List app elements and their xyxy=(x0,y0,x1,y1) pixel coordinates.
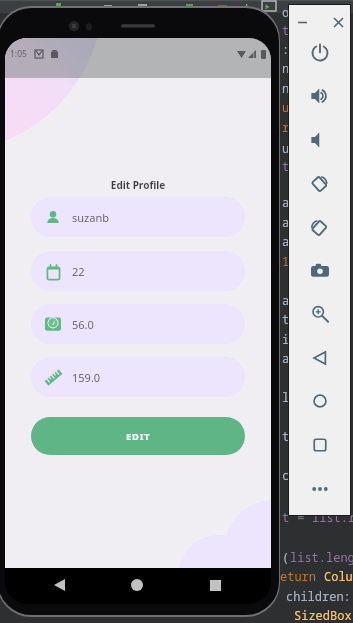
button[interactable]: Overview xyxy=(288,426,351,464)
staticText: i xyxy=(282,331,290,347)
staticText: list.re xyxy=(312,509,353,525)
button[interactable]: 159.0 xyxy=(31,357,245,397)
button[interactable]: More xyxy=(288,470,351,508)
staticText: c xyxy=(282,467,290,483)
button[interactable]: Volume up xyxy=(288,77,351,115)
staticText: 1 xyxy=(282,253,290,269)
button[interactable]: Back xyxy=(288,339,351,377)
button[interactable]: suzanb xyxy=(31,197,245,237)
staticText: t xyxy=(282,428,290,444)
staticText: a xyxy=(282,233,290,249)
staticText: a xyxy=(282,350,290,366)
staticText: SizedBox xyxy=(294,607,352,623)
staticText: u xyxy=(282,140,290,156)
staticText: u xyxy=(282,99,290,115)
staticText: 22 xyxy=(72,264,85,279)
staticText: Edit Profile xyxy=(5,178,271,192)
staticText: text xyxy=(282,22,311,38)
staticText: eturn xyxy=(280,568,324,584)
button[interactable]: Back xyxy=(42,568,76,602)
button[interactable]: Take screenshot xyxy=(288,252,351,290)
staticText: 56.0 xyxy=(72,317,94,332)
staticText: a xyxy=(282,292,290,308)
button[interactable]: Rotate left xyxy=(288,164,351,202)
button[interactable]: 56.0 xyxy=(31,304,245,344)
staticText: t xyxy=(282,158,290,174)
staticText: n xyxy=(282,60,290,76)
staticText: ( xyxy=(282,549,290,565)
button[interactable]: EDIT xyxy=(31,417,245,455)
button[interactable]: 22 xyxy=(31,251,245,291)
button[interactable]: Home xyxy=(120,568,154,602)
button[interactable]: Zoom xyxy=(288,295,351,333)
staticText: t xyxy=(282,509,290,525)
staticText: children: xyxy=(286,588,351,604)
button[interactable]: Minimise xyxy=(291,15,313,29)
staticText: n xyxy=(282,80,290,96)
button[interactable]: Rotate right xyxy=(288,208,351,246)
staticText: : xyxy=(282,41,290,57)
staticText: a xyxy=(282,214,290,230)
staticText: suzanb xyxy=(72,210,109,225)
staticText: EDIT xyxy=(126,430,151,443)
button[interactable]: Volume down xyxy=(288,121,351,159)
staticText: l xyxy=(282,389,290,405)
staticText: r xyxy=(282,119,290,135)
staticText: = xyxy=(290,509,312,525)
button[interactable]: Home xyxy=(288,382,351,420)
staticText: ot xyxy=(282,4,297,20)
button[interactable]: Recent apps xyxy=(198,568,232,602)
staticText: 159.0 xyxy=(72,370,101,385)
staticText: list.length xyxy=(290,549,353,565)
button[interactable]: Power xyxy=(288,34,351,72)
staticText: a xyxy=(282,194,290,210)
staticText: Column xyxy=(324,568,353,584)
button[interactable]: Close xyxy=(327,15,349,29)
staticText: t xyxy=(282,311,290,327)
staticText: 1:05 xyxy=(10,48,27,60)
